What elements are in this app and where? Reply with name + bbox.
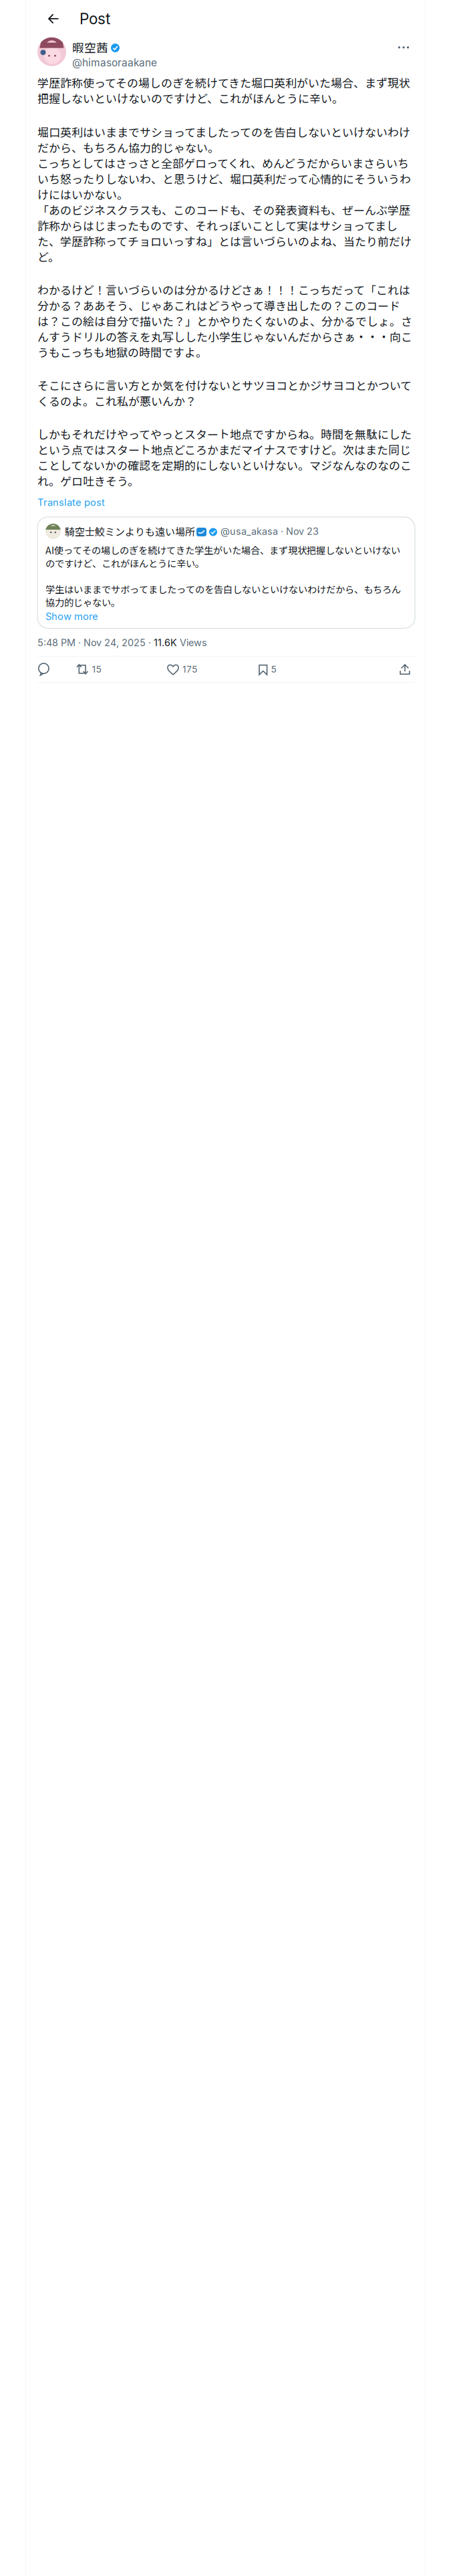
staticText: Show more	[45, 610, 98, 622]
button[interactable]: 15	[76, 659, 167, 680]
staticText: Translate post	[37, 496, 105, 508]
staticText: わかるけど！言いづらいのは分かるけどさぁ！！！こっちだって「これは分かる？ああそ…	[37, 281, 412, 360]
button[interactable]: 騎空士鮫ミンよりも遠い場所	[37, 517, 415, 628]
staticText: 11.6K	[154, 637, 177, 649]
button[interactable]: More options	[394, 39, 414, 56]
staticText: 15	[92, 664, 101, 675]
staticText: @usa_akasa · Nov 23	[220, 525, 319, 537]
staticText: 175	[182, 664, 197, 675]
staticText: 騎空士鮫ミンよりも遠い場所	[65, 524, 195, 539]
button[interactable]: Reply	[37, 659, 76, 680]
staticText: @himasoraakane	[72, 56, 157, 69]
staticText: 5:48 PM · Nov 24, 2025 ·	[37, 637, 154, 649]
staticText: Views	[177, 637, 207, 649]
button[interactable]: 5	[259, 659, 339, 680]
button[interactable]: Translate post	[37, 496, 105, 509]
staticText: しかもそれだけやってやっとスタート地点ですからね。時間を無駄にしたという点ではス…	[37, 426, 412, 489]
button[interactable]: Profile photo	[37, 37, 66, 66]
staticText: AI使ってその場しのぎを続けてきた学生がいた場合、まず現状把握しないといけないの…	[45, 543, 400, 570]
staticText: 学生はいままでサボってましたってのを告白しないといけないわけだから、もちろん協力…	[45, 582, 401, 609]
button[interactable]: Share	[396, 659, 414, 680]
button[interactable]: Back	[42, 7, 65, 30]
button[interactable]: 175	[167, 659, 259, 680]
staticText: 5	[271, 664, 276, 675]
staticText: Post	[80, 10, 110, 28]
staticText: 堀口英利はいままでサショってましたってのを告白しないといけないわけだから、もちろ…	[37, 124, 412, 265]
staticText: そこにさらに言い方とか気を付けないとサツヨコとかジサヨコとかついてくるのよ。これ…	[37, 377, 412, 409]
staticText: 学歴詐称使ってその場しのぎを続けてきた堀口英利がいた場合、まず現状把握しないとい…	[37, 74, 410, 106]
staticText: 暇空茜	[72, 39, 108, 56]
